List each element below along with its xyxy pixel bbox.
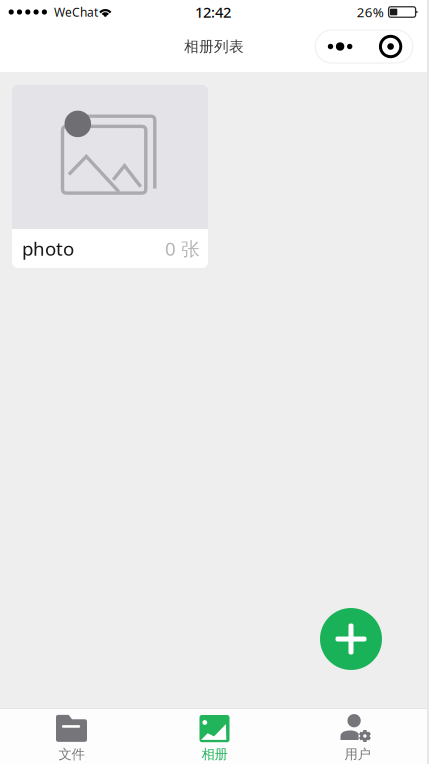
staticText: 文件: [58, 746, 84, 763]
staticText: 用户: [344, 746, 370, 763]
staticText: photo: [22, 236, 74, 261]
staticText: 26%: [357, 3, 384, 21]
button[interactable]: photo: [12, 85, 208, 268]
button[interactable]: 用户: [286, 708, 429, 764]
staticText: 相册列表: [184, 37, 244, 55]
button[interactable]: 文件: [0, 708, 143, 764]
staticText: 0 张: [165, 236, 200, 261]
button[interactable]: Close mini program: [371, 30, 411, 63]
staticText: WeChat: [54, 4, 98, 20]
button[interactable]: Create album: [320, 608, 382, 670]
button[interactable]: More options: [316, 30, 364, 63]
staticText: 相册: [201, 746, 227, 763]
staticText: 12:42: [195, 2, 231, 22]
button[interactable]: 相册: [143, 708, 286, 764]
